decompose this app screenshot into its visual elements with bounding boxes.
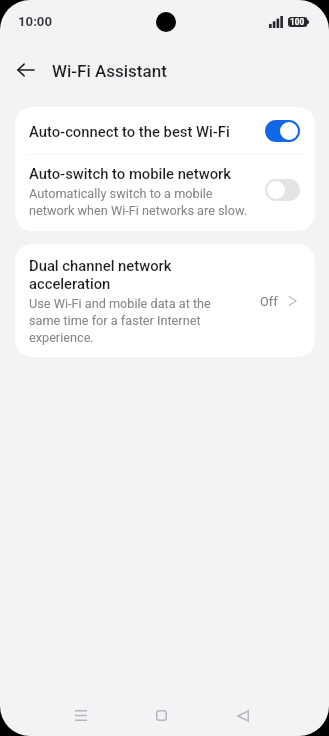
staticText: Automatically switch to a mobile network…: [29, 185, 258, 219]
staticText: Auto-connect to the best Wi-Fi: [29, 122, 265, 140]
button[interactable]: Off: [265, 179, 300, 201]
button[interactable]: Auto-connect to the best Wi-Fi: [15, 107, 315, 154]
button[interactable]: Dual channel network acceleration: [15, 244, 315, 357]
staticText: 100: [290, 17, 305, 27]
staticText: Auto-switch to mobile network: [29, 164, 232, 182]
button[interactable]: Back: [226, 699, 259, 732]
button[interactable]: Auto-switch to mobile network: [15, 155, 315, 231]
button[interactable]: Recent apps: [64, 699, 97, 732]
staticText: Use Wi-Fi and mobile data at the same ti…: [29, 295, 220, 346]
staticText: Wi-Fi Assistant: [52, 61, 167, 81]
staticText: Off: [260, 294, 278, 309]
button[interactable]: On: [265, 120, 300, 142]
button[interactable]: Home: [145, 699, 178, 732]
button[interactable]: Back: [8, 52, 43, 87]
staticText: Dual channel network acceleration: [29, 256, 220, 292]
staticText: 10:00: [18, 14, 52, 29]
